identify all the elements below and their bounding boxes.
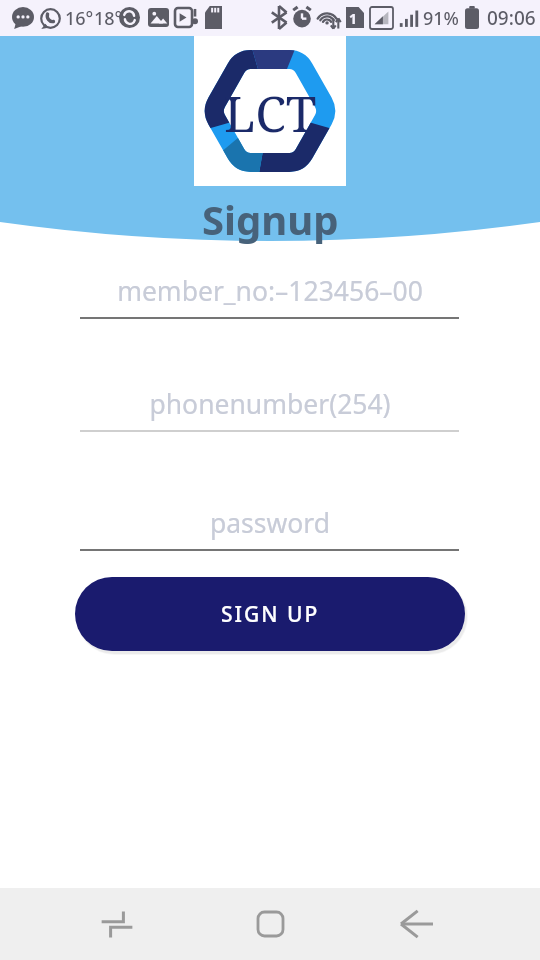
staticText: LCT (224, 79, 317, 147)
staticText: 16° (65, 6, 94, 31)
button[interactable]: Home (236, 888, 304, 960)
staticText: 1 (349, 9, 358, 28)
button[interactable]: Recents (83, 888, 151, 960)
staticText: 18° (94, 6, 123, 31)
button[interactable]: SIGN UP (75, 577, 465, 651)
staticText: phonenumber(254) (80, 386, 460, 422)
staticText: 91% (423, 6, 459, 31)
staticText: 09:06 (487, 5, 536, 31)
staticText: password (80, 505, 460, 541)
staticText: member_no:–123456–00 (80, 273, 460, 309)
staticText: Signup (202, 192, 339, 246)
staticText: SIGN UP (221, 600, 320, 629)
button[interactable]: Back (383, 888, 451, 960)
